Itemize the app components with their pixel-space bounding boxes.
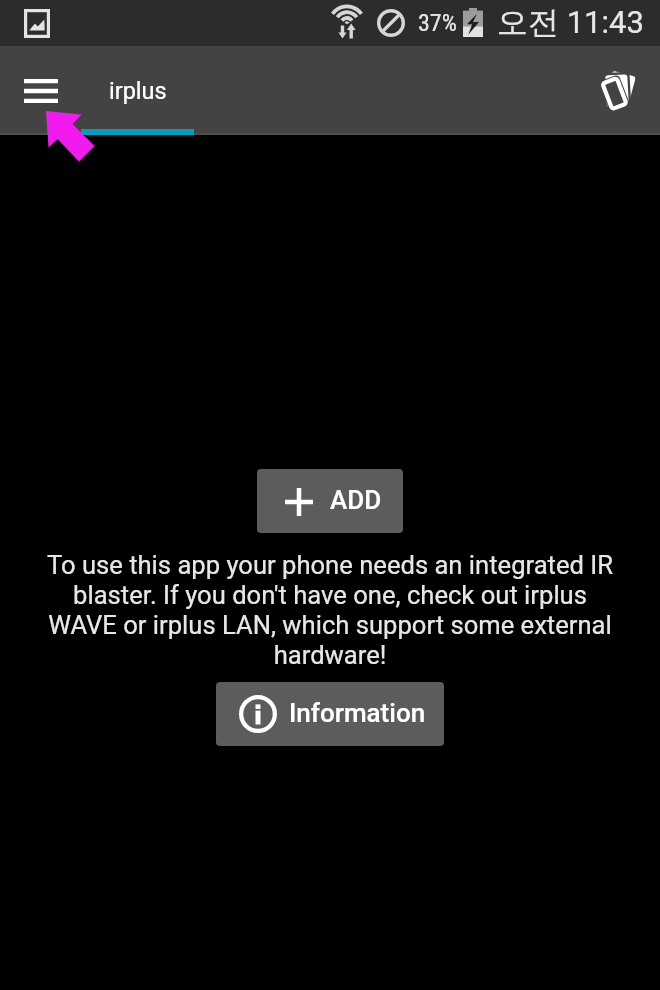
button[interactable]: Information <box>216 682 444 746</box>
button[interactable]: ADD <box>257 469 403 533</box>
staticText: ADD <box>330 485 382 515</box>
staticText: irplus <box>109 77 167 105</box>
staticText: Information <box>289 698 426 728</box>
button[interactable]: Open navigation drawer <box>6 56 75 125</box>
staticText: 37% <box>418 9 457 37</box>
staticText: To use this app your phone needs an inte… <box>41 550 619 670</box>
button[interactable]: Remote cards <box>592 61 652 121</box>
staticText: 오전 11:43 <box>497 3 644 42</box>
